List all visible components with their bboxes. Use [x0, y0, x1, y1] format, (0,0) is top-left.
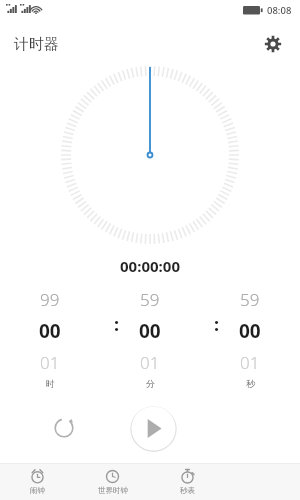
staticText: 01	[40, 351, 60, 374]
staticText: 99	[40, 288, 60, 311]
button[interactable]: Settings	[258, 29, 288, 59]
staticText: :	[214, 312, 220, 337]
staticText: 分	[146, 378, 155, 389]
staticText: 闹钟	[30, 486, 45, 495]
staticText: :	[114, 312, 120, 337]
staticText: 00:00:00	[120, 256, 180, 276]
staticText: 01	[240, 351, 260, 374]
staticText: 59	[140, 288, 160, 311]
button[interactable]: Start	[130, 405, 177, 452]
button[interactable]: 99	[0, 288, 100, 389]
staticText: 计时器	[14, 35, 59, 54]
staticText: 秒	[246, 378, 255, 389]
staticText: 01	[140, 351, 160, 374]
staticText: 时	[46, 378, 55, 389]
button[interactable]: 闹钟	[0, 464, 75, 500]
button[interactable]: 秒表	[150, 464, 225, 500]
staticText: 08:08	[267, 4, 292, 17]
staticText: 00	[39, 318, 61, 344]
staticText: 59	[240, 288, 260, 311]
button[interactable]: 世界时钟	[75, 464, 150, 500]
button[interactable]: Reset	[46, 410, 82, 446]
staticText: 00	[239, 318, 261, 344]
button[interactable]: 59	[200, 288, 300, 389]
button[interactable]: 59	[100, 288, 200, 389]
staticText: 00	[139, 318, 161, 344]
staticText: 秒表	[180, 486, 195, 495]
staticText: 世界时钟	[98, 486, 128, 495]
